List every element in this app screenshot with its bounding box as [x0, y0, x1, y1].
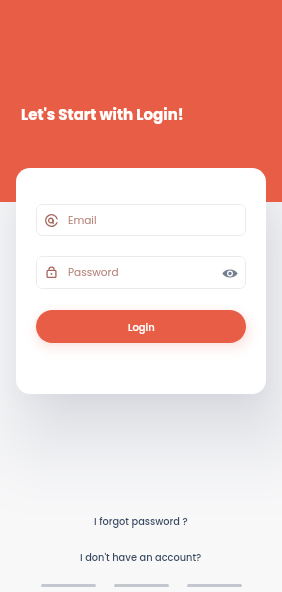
- staticText: Let's Start with Login!: [21, 104, 184, 125]
- button[interactable]: Show password: [221, 264, 239, 282]
- button[interactable]: I forgot password ?: [82, 511, 200, 533]
- staticText: Login: [128, 320, 155, 334]
- button[interactable]: Login: [36, 310, 246, 343]
- staticText: Password: [68, 265, 119, 280]
- button[interactable]: I don't have an account?: [68, 547, 214, 569]
- button[interactable]: Password: [36, 256, 246, 289]
- staticText: Email: [68, 213, 97, 228]
- staticText: I don't have an account?: [80, 551, 202, 565]
- staticText: I forgot password ?: [94, 515, 188, 529]
- button[interactable]: Email: [36, 204, 246, 236]
